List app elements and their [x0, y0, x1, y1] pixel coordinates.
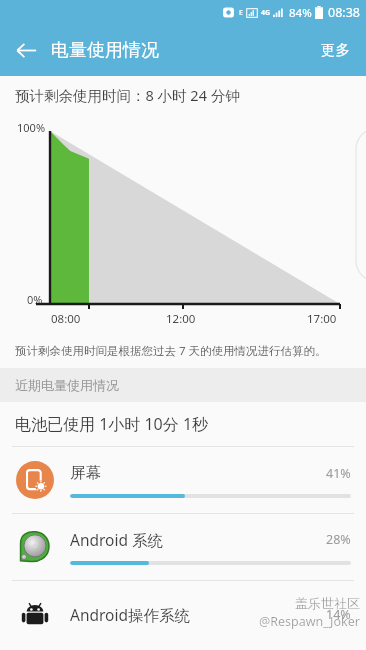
button[interactable]: Back [6, 30, 46, 70]
staticText: Android操作系统 [70, 604, 326, 625]
staticText: 电池已使用 1小时 10分 1秒 [15, 413, 209, 435]
staticText: Android 系统 [70, 529, 326, 550]
staticText: 电量使用情况 [51, 39, 159, 62]
staticText: E [239, 8, 243, 18]
staticText: 屏幕 [70, 463, 326, 483]
staticText: 预计剩余使用时间是根据您过去 7 天的使用情况进行估算的。 [15, 343, 327, 359]
staticText: 0% [27, 292, 43, 307]
button[interactable]: Android 系统 [0, 514, 366, 580]
staticText: 预计剩余使用时间：8 小时 24 分钟 [15, 85, 240, 105]
staticText: 17:00 [307, 311, 337, 327]
staticText: 更多 [321, 41, 350, 59]
button[interactable]: Android操作系统 [0, 581, 366, 647]
staticText: @Respawn_Joker [259, 613, 360, 630]
staticText: 近期电量使用情况 [15, 377, 119, 393]
staticText: 盖乐世社区 [295, 595, 360, 611]
staticText: 41% [326, 465, 351, 482]
staticText: 100% [17, 120, 46, 135]
button[interactable]: 屏幕 [0, 447, 366, 513]
staticText: 84% [289, 5, 312, 21]
staticText: 12:00 [166, 311, 196, 327]
staticText: 4G [261, 8, 271, 18]
staticText: 28% [326, 531, 351, 548]
staticText: 08:00 [51, 311, 81, 327]
button[interactable]: 更多 [305, 29, 366, 71]
staticText: 14% [326, 606, 351, 623]
staticText: 08:38 [328, 4, 360, 21]
